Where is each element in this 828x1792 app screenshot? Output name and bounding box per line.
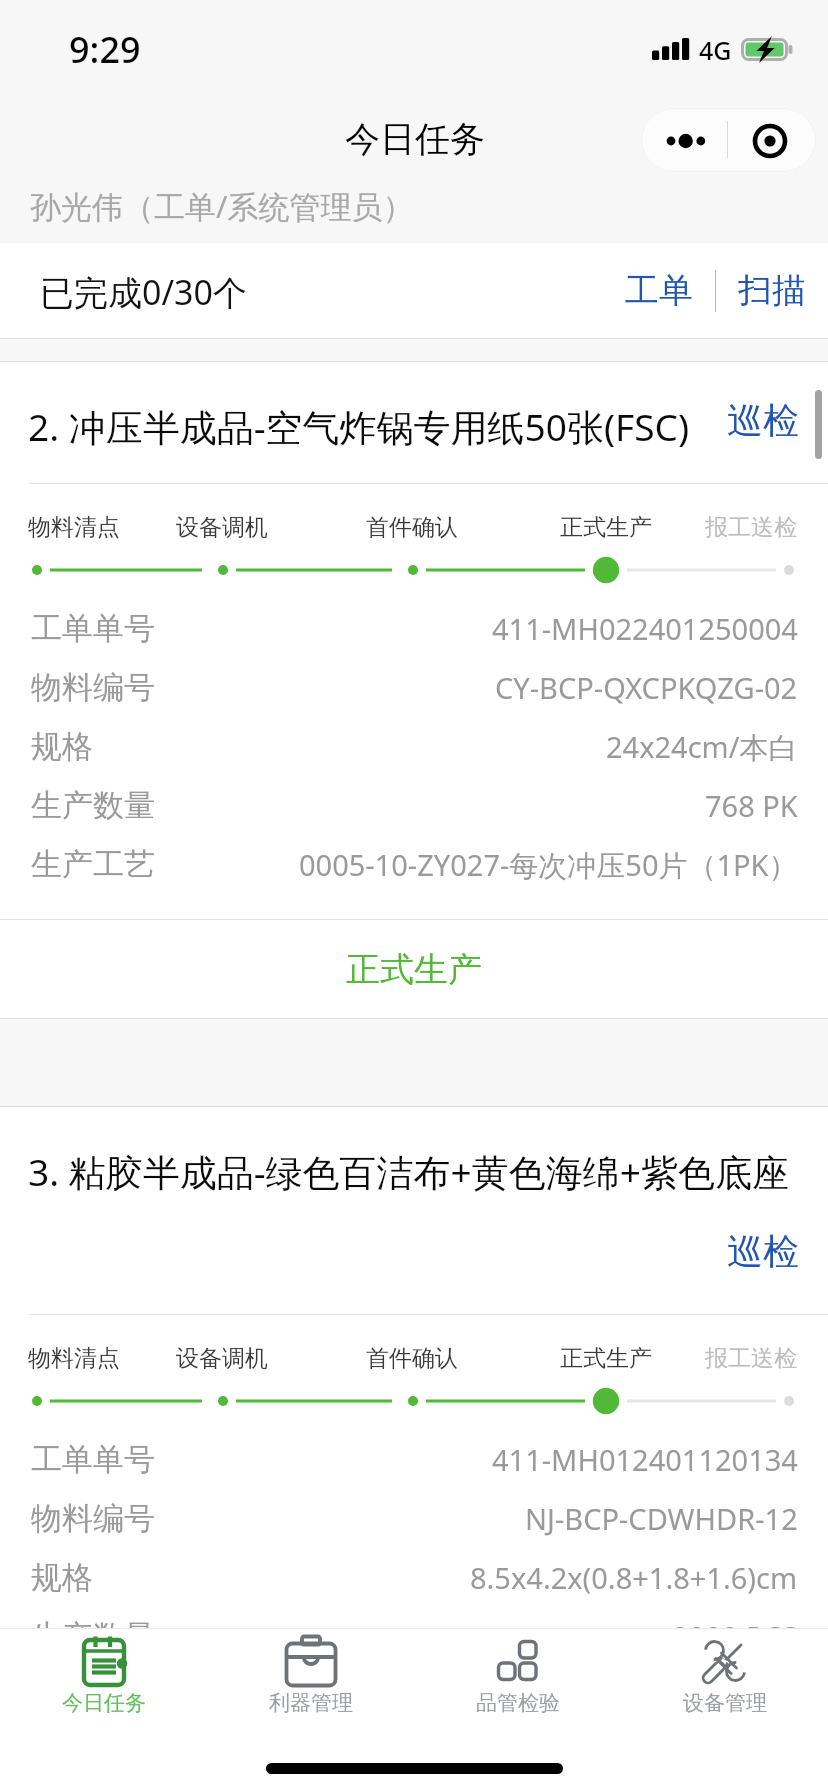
staticText: 生产数量 — [31, 1617, 155, 1656]
button[interactable]: 品管检验 — [414, 1629, 621, 1732]
staticText: 正式生产 — [536, 1344, 676, 1373]
button[interactable]: More options — [641, 108, 728, 172]
staticText: 3. 粘胶半成品-绿色百洁布+黄色海绵+紫色底座 — [28, 1146, 789, 1197]
staticText: 正式生产 — [536, 513, 676, 542]
button[interactable]: 利器管理 — [207, 1629, 414, 1732]
button[interactable]: 巡检 — [708, 380, 818, 460]
staticText: 生产数量 — [31, 786, 155, 825]
staticText: 设备调机 — [152, 1344, 292, 1373]
staticText: 工单单号 — [31, 609, 155, 648]
staticText: 411-MH012401120134 — [492, 1440, 798, 1479]
button[interactable]: Close mini program — [728, 108, 816, 172]
staticText: 2. 冲压半成品-空气炸锅专用纸50张(FSC) — [28, 401, 690, 452]
staticText: 正式生产 — [346, 948, 482, 991]
button[interactable]: 巡检 — [708, 1211, 818, 1291]
staticText: 今日任务 — [62, 1690, 146, 1716]
staticText: 设备调机 — [152, 513, 292, 542]
staticText: 报工送检 — [681, 513, 821, 542]
button[interactable]: 设备管理 — [621, 1629, 828, 1732]
staticText: 规格 — [31, 727, 93, 766]
button[interactable]: 正式生产 — [0, 920, 828, 1018]
button[interactable]: 今日任务 — [0, 1629, 207, 1732]
staticText: 巡检 — [727, 398, 799, 443]
staticText: 物料清点 — [4, 1344, 144, 1373]
staticText: 9:29 — [69, 25, 141, 74]
staticText: 报工送检 — [681, 1344, 821, 1373]
button[interactable]: 2. 冲压半成品-空气炸锅专用纸50张(FSC) — [0, 372, 828, 472]
staticText: 品管检验 — [476, 1690, 560, 1716]
staticText: 2000 PCS — [672, 1617, 798, 1656]
staticText: 生产工艺 — [31, 845, 155, 884]
staticText: 已完成0/30个 — [40, 269, 247, 315]
button[interactable]: 3. 粘胶半成品-绿色百洁布+黄色海绵+紫色底座 — [0, 1117, 828, 1217]
staticText: CY-BCP-QXCPKQZG-02 — [495, 668, 798, 707]
staticText: 利器管理 — [269, 1690, 353, 1716]
button[interactable]: 工单 — [603, 253, 715, 328]
staticText: NJ-BCP-CDWHDR-12 — [525, 1499, 798, 1538]
staticText: 孙光伟（工单/系统管理员） — [30, 185, 414, 227]
staticText: 首件确认 — [342, 513, 482, 542]
staticText: 4G — [699, 33, 732, 67]
staticText: 物料编号 — [31, 668, 155, 707]
staticText: 物料编号 — [31, 1499, 155, 1538]
staticText: 首件确认 — [342, 1344, 482, 1373]
staticText: 扫描 — [738, 269, 806, 312]
staticText: 规格 — [31, 1558, 93, 1597]
staticText: 411-MH022401250004 — [492, 609, 798, 648]
staticText: 工单 — [625, 269, 693, 312]
staticText: 8.5x4.2x(0.8+1.8+1.6)cm — [470, 1558, 798, 1597]
staticText: 物料清点 — [4, 513, 144, 542]
staticText: 今日任务 — [345, 117, 485, 161]
staticText: 工单单号 — [31, 1440, 155, 1479]
staticText: 24x24cm/本白 — [606, 727, 798, 767]
staticText: 0005-10-ZY027-每次冲压50片（1PK） — [299, 845, 798, 885]
staticText: 768 PK — [705, 786, 798, 825]
staticText: 设备管理 — [683, 1690, 767, 1716]
staticText: 巡检 — [727, 1229, 799, 1274]
button[interactable]: 扫描 — [716, 253, 828, 328]
